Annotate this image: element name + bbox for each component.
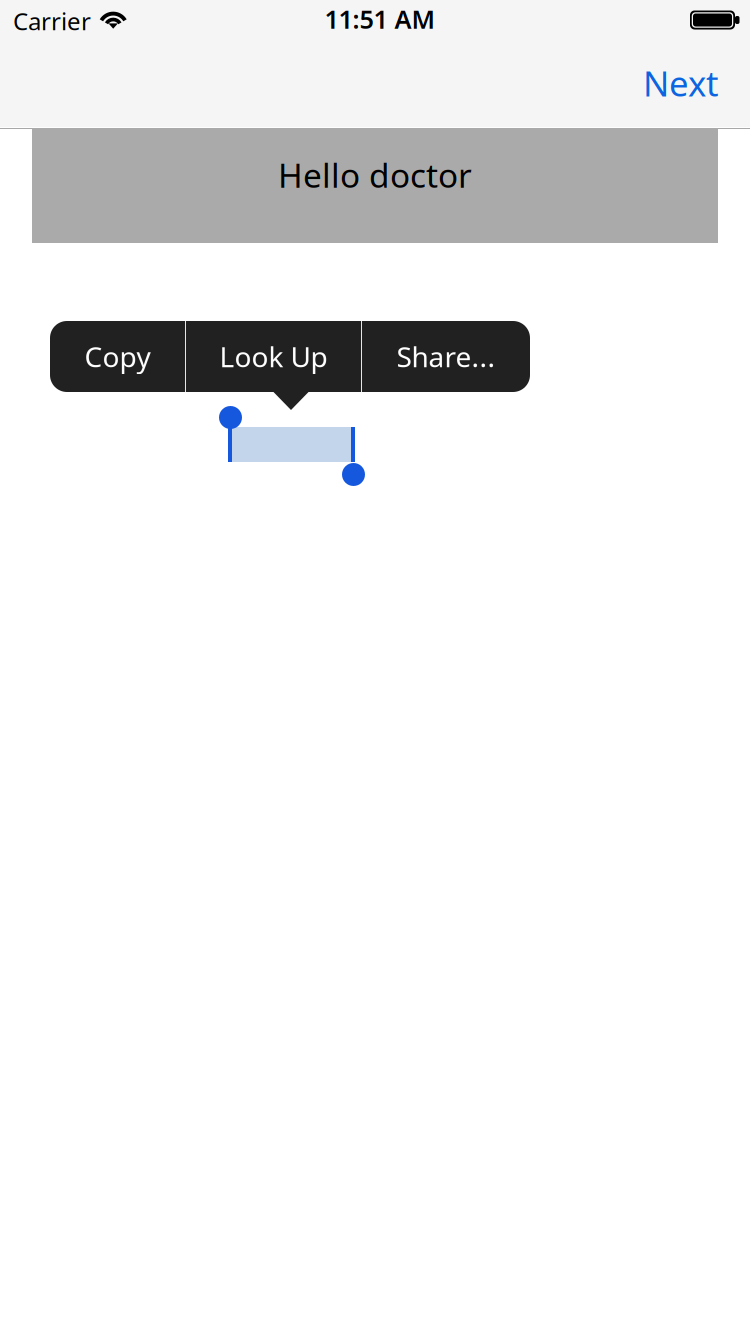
button[interactable]: Copy: [50, 321, 185, 392]
staticText: Carrier: [13, 5, 91, 37]
button[interactable]: Selection end handle: [342, 427, 365, 486]
button[interactable]: Look Up: [186, 321, 361, 392]
staticText: Look Up: [219, 338, 327, 375]
button[interactable]: Share...: [362, 321, 530, 392]
button[interactable]: Selection start handle: [219, 406, 242, 462]
button[interactable]: Hello doctor, text field: [32, 128, 718, 243]
staticText: Next: [643, 60, 719, 106]
staticText: Copy: [84, 338, 150, 375]
staticText: Hello doctor: [278, 153, 472, 197]
staticText: 11:51 AM: [324, 2, 435, 36]
staticText: Share...: [396, 338, 495, 375]
button[interactable]: Next: [617, 43, 750, 124]
